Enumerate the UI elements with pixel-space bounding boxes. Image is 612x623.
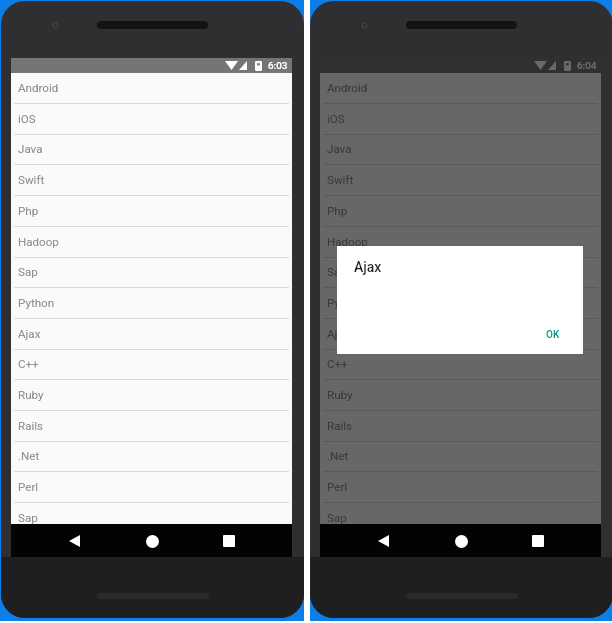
button[interactable]: Back [59, 526, 89, 556]
staticText: Rails [327, 419, 353, 433]
button[interactable]: Perl [320, 472, 601, 503]
button[interactable]: OK [546, 329, 583, 354]
staticText: Python [18, 296, 55, 310]
staticText: Ruby [327, 388, 353, 402]
staticText: Ajax [18, 327, 41, 341]
staticText: 6:04 [577, 60, 597, 71]
button[interactable]: Sap [320, 503, 601, 524]
staticText: iOS [18, 112, 36, 126]
staticText: Php [327, 204, 348, 218]
staticText: iOS [327, 112, 345, 126]
staticText: Hadoop [18, 235, 59, 249]
staticText: Ajax [327, 327, 350, 341]
staticText: Java [327, 142, 352, 156]
staticText: Ruby [18, 388, 44, 402]
button[interactable]: iOS [11, 104, 292, 135]
button[interactable]: Python [320, 288, 601, 319]
button[interactable]: Recent apps [214, 526, 244, 556]
staticText: Python [327, 296, 364, 310]
staticText: OK [546, 329, 560, 341]
button[interactable]: C++ [320, 349, 601, 380]
button[interactable]: Swift [320, 165, 601, 196]
button[interactable]: Sap [11, 503, 292, 524]
button[interactable]: iOS [320, 104, 601, 135]
staticText: C++ [327, 357, 348, 371]
button[interactable]: Java [320, 134, 601, 165]
staticText: Sap [327, 511, 347, 524]
button[interactable]: C++ [11, 349, 292, 380]
staticText: .Net [327, 449, 349, 463]
button[interactable]: Php [320, 196, 601, 227]
staticText: Sap [18, 511, 38, 524]
button[interactable]: Hadoop [320, 227, 601, 258]
staticText: Rails [18, 419, 44, 433]
staticText: Perl [327, 480, 348, 494]
button[interactable]: Java [11, 134, 292, 165]
staticText: Android [18, 81, 59, 95]
staticText: Android [327, 81, 368, 95]
button[interactable]: .Net [11, 441, 292, 472]
button[interactable]: Recent apps [523, 526, 553, 556]
button[interactable]: Python [11, 288, 292, 319]
staticText: Ajax [354, 259, 382, 275]
staticText: Sap [18, 265, 38, 279]
button[interactable]: Home [446, 526, 476, 556]
button[interactable]: Hadoop [11, 227, 292, 258]
button[interactable]: Rails [320, 411, 601, 442]
staticText: Hadoop [327, 235, 368, 249]
button[interactable]: Ruby [11, 380, 292, 411]
staticText: .Net [18, 449, 40, 463]
button[interactable]: Sap [11, 257, 292, 288]
staticText: Sap [327, 265, 347, 279]
button[interactable]: Android [11, 73, 292, 104]
staticText: Php [18, 204, 39, 218]
button[interactable]: Rails [11, 411, 292, 442]
staticText: Java [18, 142, 43, 156]
staticText: Swift [327, 173, 354, 187]
button[interactable]: Php [11, 196, 292, 227]
button[interactable]: .Net [320, 441, 601, 472]
button[interactable]: Back [368, 526, 398, 556]
button[interactable]: Sap [320, 257, 601, 288]
staticText: Perl [18, 480, 39, 494]
button[interactable]: Home [137, 526, 167, 556]
staticText: C++ [18, 357, 39, 371]
button[interactable]: Perl [11, 472, 292, 503]
button[interactable]: Swift [11, 165, 292, 196]
staticText: 6:03 [268, 60, 288, 71]
button[interactable]: Ajax [11, 319, 292, 350]
button[interactable]: Android [320, 73, 601, 104]
button[interactable]: Ajax [320, 319, 601, 350]
staticText: Swift [18, 173, 45, 187]
button[interactable]: Ruby [320, 380, 601, 411]
